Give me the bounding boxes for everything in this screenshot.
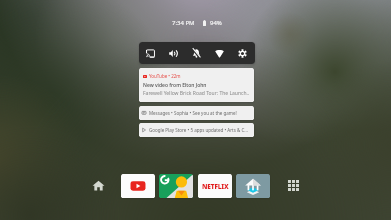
staticText: 94% <box>210 19 222 27</box>
button[interactable]: Google Play Store • 5 apps updated • Art… <box>139 123 254 137</box>
button[interactable]: Netflix <box>198 174 232 198</box>
button[interactable]: Notifications off <box>185 42 208 64</box>
staticText: NETFLIX <box>202 182 229 191</box>
button[interactable]: Settings <box>231 42 254 64</box>
staticText: New video from Elton John <box>143 82 207 89</box>
button[interactable]: All apps <box>288 180 299 191</box>
button[interactable]: Volume <box>162 42 185 64</box>
button[interactable]: Messages • Sophia • See you at the game! <box>139 106 254 120</box>
button[interactable]: Home <box>92 179 105 192</box>
staticText: Messages • Sophia • See you at the game! <box>149 110 237 116</box>
button[interactable]: Wi-Fi <box>208 42 231 64</box>
button[interactable]: YouTube • 22m <box>139 68 254 102</box>
button[interactable]: Google <box>159 174 193 198</box>
staticText: Google Play Store • 5 apps updated • Art… <box>149 127 248 133</box>
staticText: YouTube • 22m <box>149 73 181 79</box>
button[interactable]: YouTube <box>121 174 155 198</box>
button[interactable]: Cast <box>139 42 162 64</box>
button[interactable]: Sideload Launcher <box>236 174 270 198</box>
staticText: 7:34 PM <box>172 19 195 27</box>
staticText: Farewell Yellow Brick Road Tour: The Lau… <box>143 90 250 97</box>
